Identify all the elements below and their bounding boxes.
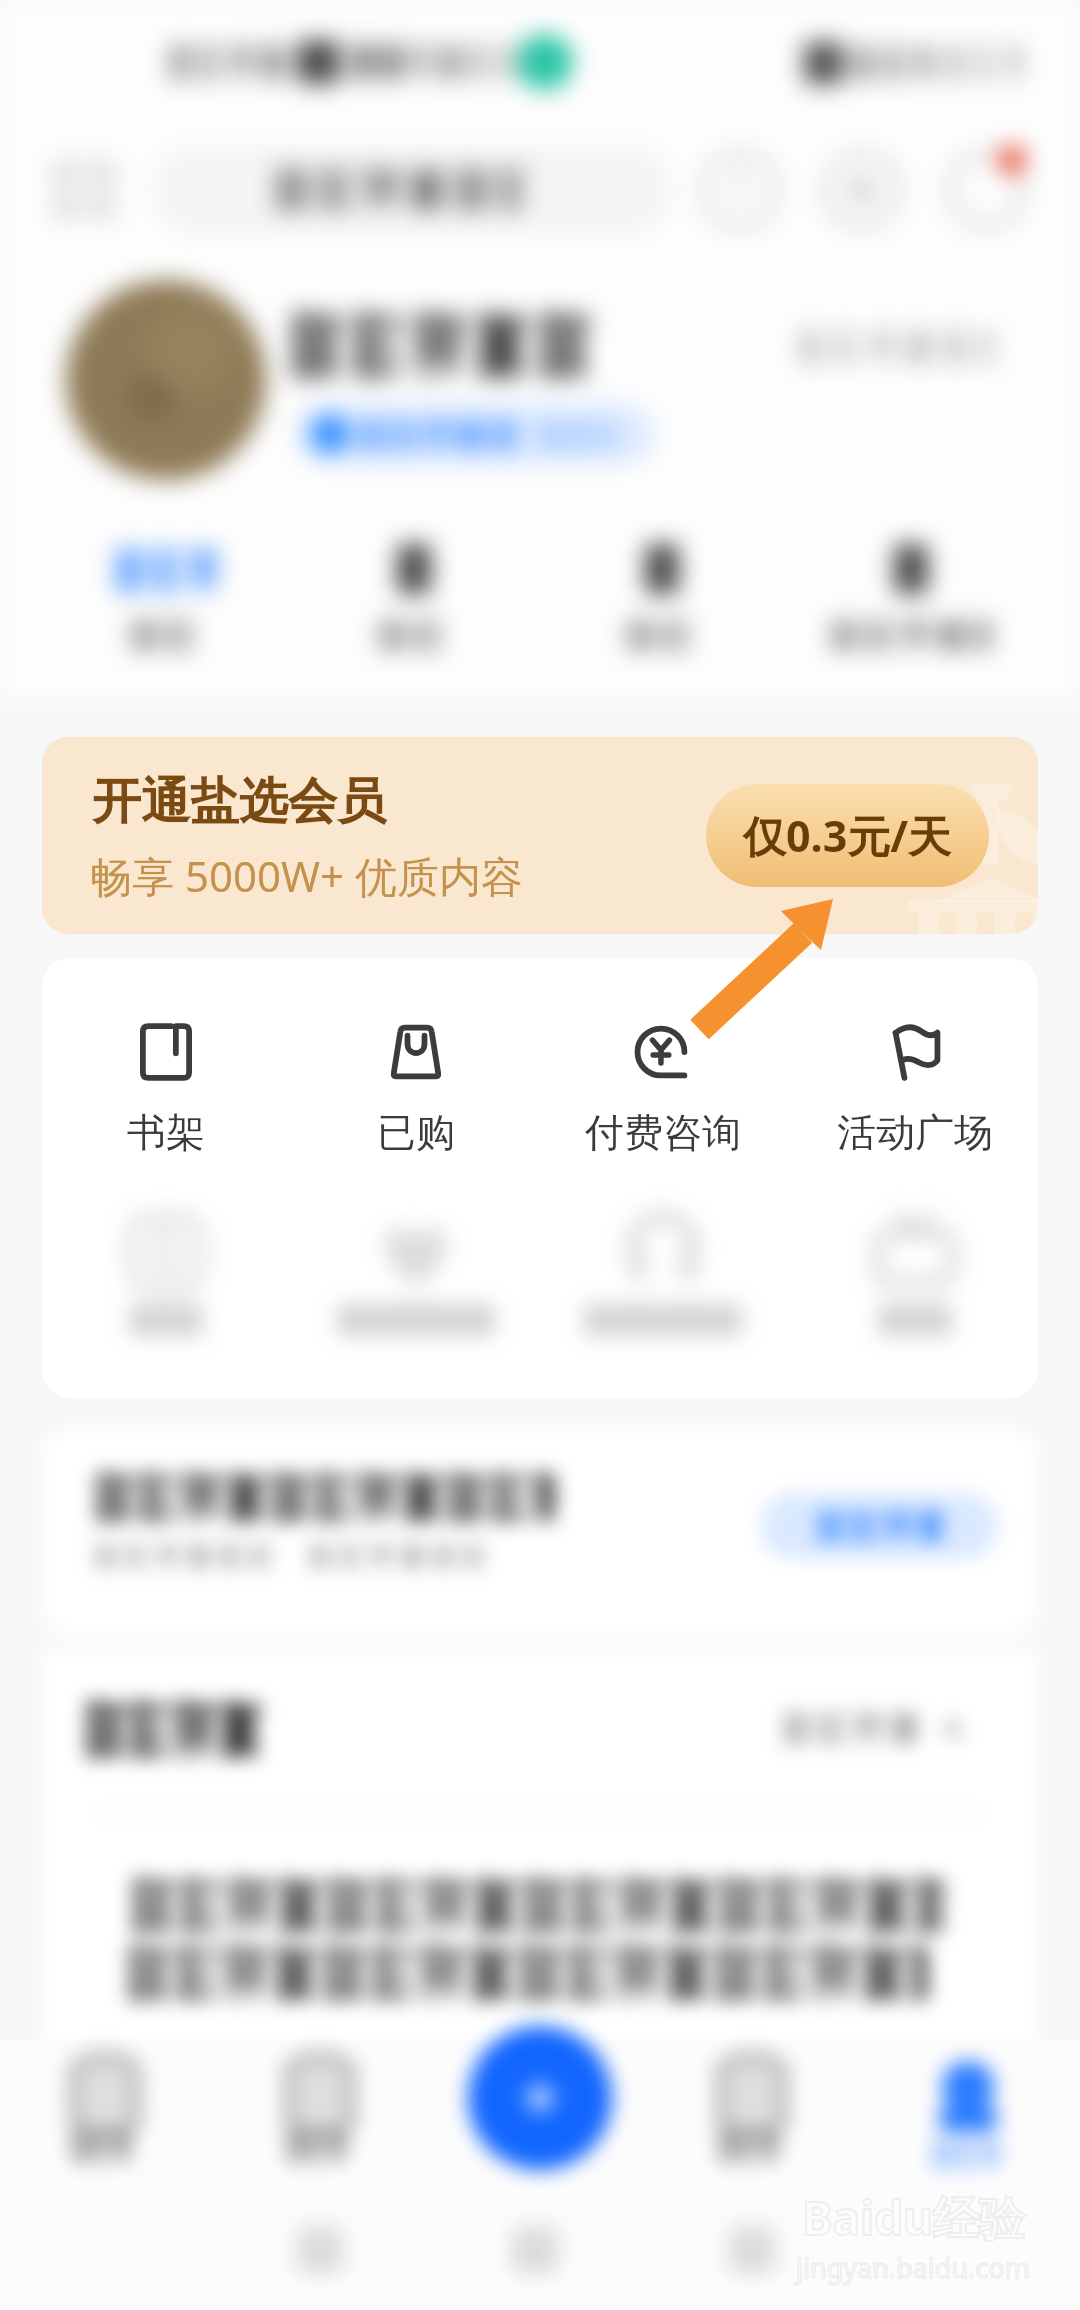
button[interactable]: Discover	[216, 2140, 432, 2310]
button[interactable]: 书架	[81, 986, 251, 1166]
button[interactable]: Messages	[648, 2140, 864, 2310]
button[interactable]: 活动广场	[830, 986, 1000, 1166]
button[interactable]: 付费咨询	[578, 986, 748, 1166]
staticText: 畅享 5000W+ 优质内容	[90, 847, 524, 904]
staticText: 开通盐选会员	[92, 771, 386, 833]
staticText: 仅0.3元/天	[743, 806, 952, 865]
staticText: 活动广场	[837, 1108, 993, 1157]
staticText: jingyan.baidu.com	[796, 2249, 1030, 2286]
button[interactable]: 开通盐选会员	[42, 737, 1038, 934]
staticText: Baidu经验	[802, 2186, 1025, 2249]
staticText: 付费咨询	[585, 1108, 741, 1157]
button[interactable]: 已购	[331, 986, 501, 1166]
button[interactable]: Create post	[432, 2140, 648, 2310]
staticText: 已购	[377, 1108, 455, 1157]
staticText: 书架	[127, 1108, 205, 1157]
button[interactable]: Profile	[864, 2140, 1080, 2310]
button[interactable]: 仅0.3元/天	[706, 784, 989, 887]
button[interactable]: Home	[0, 2140, 216, 2310]
